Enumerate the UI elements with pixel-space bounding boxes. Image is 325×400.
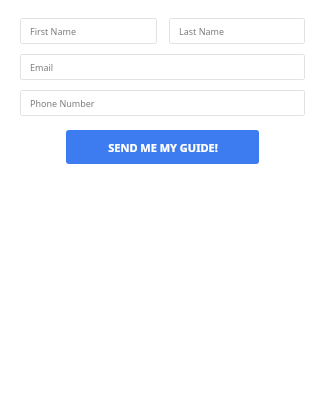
staticText: First Name (30, 25, 76, 37)
button[interactable]: First Name (20, 18, 157, 44)
staticText: Last Name (179, 25, 225, 37)
button[interactable]: Last Name (169, 18, 305, 44)
button[interactable]: SEND ME MY GUIDE! (66, 130, 259, 164)
button[interactable]: Email (20, 54, 305, 80)
staticText: Email (30, 61, 54, 73)
staticText: SEND ME MY GUIDE! (108, 140, 218, 155)
staticText: Phone Number (30, 97, 95, 109)
button[interactable]: Phone Number (20, 90, 305, 116)
